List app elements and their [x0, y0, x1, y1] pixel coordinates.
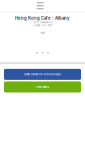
staticText: Map — [40, 31, 44, 34]
staticText: Start Order on iPhone App — [24, 73, 61, 76]
button[interactable]: View Menu — [4, 81, 81, 92]
button[interactable]: Menu — [0, 0, 85, 12]
staticText: Albany, GA 31707 — [33, 24, 52, 27]
staticText: View Menu — [35, 85, 49, 88]
staticText: Hong Kong Cafe - Albany — [15, 15, 70, 21]
button[interactable]: Map — [38, 27, 46, 34]
staticText: 2700 Dawson Rd — [33, 21, 52, 24]
button[interactable]: Start Order on iPhone App — [4, 69, 81, 80]
